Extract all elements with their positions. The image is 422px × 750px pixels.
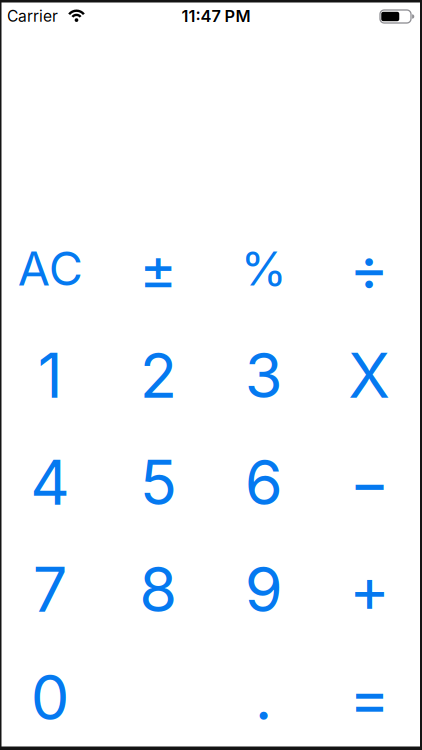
button[interactable]: 6 [211, 429, 316, 536]
button[interactable]: % [211, 215, 316, 322]
staticText: X [348, 338, 390, 412]
button[interactable] [105, 643, 211, 750]
button[interactable]: 8 [105, 536, 211, 643]
button[interactable]: AC [0, 215, 105, 322]
staticText: 5 [140, 445, 177, 519]
button[interactable]: = [316, 643, 422, 750]
staticText: 7 [33, 552, 68, 626]
button[interactable]: 2 [105, 322, 211, 429]
staticText: AC [18, 240, 83, 297]
button[interactable]: ÷ [316, 215, 422, 322]
staticText: 2 [140, 338, 177, 412]
staticText: 8 [139, 552, 177, 626]
button[interactable]: . [211, 643, 316, 750]
button[interactable]: 7 [0, 536, 105, 643]
staticText: % [241, 240, 287, 297]
staticText: − [349, 445, 389, 519]
staticText: ± [139, 234, 177, 303]
staticText: 11:47 PM [181, 6, 250, 26]
button[interactable]: 5 [105, 429, 211, 536]
button[interactable]: X [316, 322, 422, 429]
button[interactable]: 9 [211, 536, 316, 643]
button[interactable]: 0 [0, 643, 105, 750]
staticText: 0 [31, 660, 70, 734]
button[interactable]: 4 [0, 429, 105, 536]
button[interactable]: 3 [211, 322, 316, 429]
staticText: 1 [38, 338, 63, 412]
staticText: Carrier [7, 7, 58, 25]
staticText: 9 [245, 552, 283, 626]
staticText: 4 [30, 445, 70, 519]
staticText: . [255, 660, 273, 734]
staticText: + [349, 552, 389, 626]
button[interactable]: + [316, 536, 422, 643]
staticText: 6 [245, 445, 283, 519]
button[interactable]: ± [105, 215, 211, 322]
button[interactable]: − [316, 429, 422, 536]
staticText: 3 [245, 338, 283, 412]
staticText: ÷ [349, 232, 389, 305]
button[interactable]: 1 [0, 322, 105, 429]
staticText: = [349, 660, 389, 734]
